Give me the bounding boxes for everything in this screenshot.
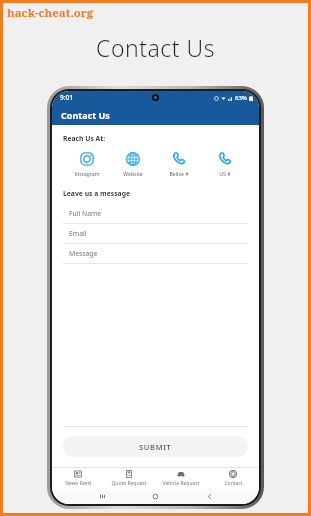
other: Recents: [99, 493, 106, 500]
staticText: Full Name: [69, 209, 102, 218]
button[interactable]: Instagram: [63, 150, 110, 178]
staticText: Message: [69, 249, 98, 258]
staticText: Contact: [224, 480, 243, 487]
button[interactable]: Contact: [207, 469, 259, 489]
staticText: News Feed: [65, 480, 91, 487]
staticText: Instagram: [74, 170, 100, 177]
other: Back: [206, 493, 213, 500]
button[interactable]: Message: [63, 244, 248, 264]
staticText: Vehicle Request: [162, 480, 200, 487]
staticText: Contact Us: [61, 109, 110, 121]
button[interactable]: Full Name: [63, 204, 248, 224]
staticText: Email: [69, 229, 87, 238]
staticText: Belize #: [169, 170, 189, 177]
button[interactable]: SUBMIT: [63, 436, 248, 457]
button[interactable]: Belize #: [156, 150, 202, 178]
button[interactable]: Email: [63, 224, 248, 244]
staticText: Quote Request: [111, 480, 147, 487]
staticText: Contact Us: [0, 32, 311, 63]
button[interactable]: Website: [110, 150, 156, 178]
button[interactable]: Vehicle Request: [155, 469, 207, 489]
button[interactable]: Quote Request: [103, 469, 155, 489]
staticText: Reach Us At:: [63, 134, 106, 143]
button[interactable]: US #: [202, 150, 248, 178]
button[interactable]: News Feed: [52, 469, 103, 489]
staticText: hack-cheat.org: [7, 5, 94, 21]
staticText: SUBMIT: [139, 442, 172, 452]
staticText: US #: [219, 170, 231, 177]
staticText: 63%: [235, 94, 247, 102]
staticText: 9:01: [60, 93, 73, 102]
staticText: Website: [123, 170, 143, 177]
staticText: Leave us a message: [63, 189, 131, 198]
other: Home: [152, 493, 159, 500]
